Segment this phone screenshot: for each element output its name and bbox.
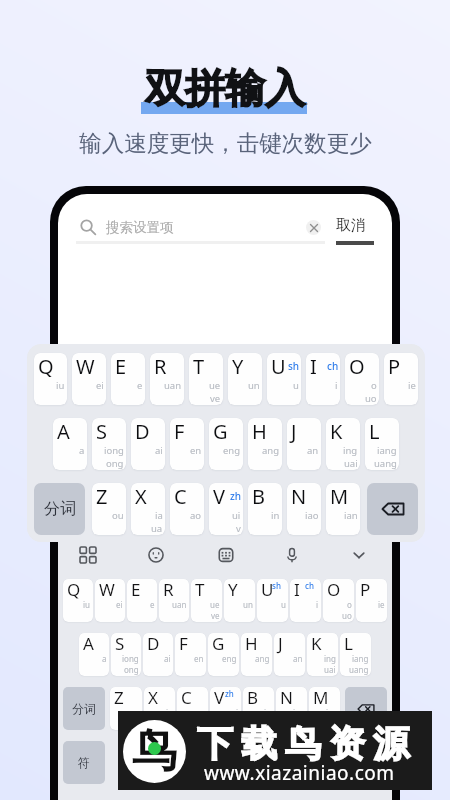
button[interactable]: Backspace (367, 483, 418, 535)
button[interactable]: R (150, 353, 184, 405)
staticText: S (96, 418, 107, 445)
button[interactable]: O (345, 353, 379, 405)
staticText: P (360, 579, 371, 601)
button[interactable]: P (384, 353, 418, 405)
staticText: iang (377, 444, 397, 457)
button[interactable]: L (365, 418, 399, 470)
staticText: F (179, 633, 188, 655)
button[interactable]: Emoji (142, 542, 170, 568)
staticText: W (76, 353, 95, 380)
button[interactable]: Keyboard layout (212, 542, 240, 568)
button[interactable]: W (72, 353, 106, 405)
button[interactable]: Y (228, 353, 262, 405)
button[interactable]: H (241, 633, 272, 676)
button[interactable]: U (257, 579, 288, 622)
staticText: I (294, 579, 300, 601)
staticText: U (271, 353, 286, 380)
button[interactable]: V (209, 483, 243, 535)
button[interactable]: M (326, 483, 360, 535)
button[interactable]: J (274, 633, 305, 676)
button[interactable]: B (248, 483, 282, 535)
button[interactable]: Z (110, 687, 142, 730)
button[interactable]: C (177, 687, 208, 730)
button[interactable]: T (189, 353, 223, 405)
staticText: ian (326, 707, 338, 718)
button[interactable]: E (127, 579, 157, 622)
button[interactable]: J (287, 418, 321, 470)
button[interactable]: D (131, 418, 165, 470)
button[interactable]: Voice input (278, 542, 306, 568)
staticText: ian (344, 509, 358, 522)
button[interactable]: M (309, 687, 340, 730)
button[interactable]: F (175, 633, 206, 676)
staticText: a (102, 653, 107, 664)
button[interactable]: O (323, 579, 354, 622)
button[interactable]: More (74, 542, 102, 568)
button[interactable]: 搜索设置项 (106, 218, 216, 236)
staticText: eng (222, 653, 237, 664)
button[interactable]: Backspace (345, 687, 387, 730)
button[interactable]: I (290, 579, 321, 622)
button[interactable]: X (144, 687, 175, 730)
button[interactable]: E (111, 353, 145, 405)
staticText: e (150, 599, 155, 610)
button[interactable]: 取消 (336, 216, 366, 235)
button[interactable]: G (208, 633, 239, 676)
button[interactable]: 分词 (34, 483, 85, 535)
staticText: ch (327, 359, 339, 373)
staticText: Z (96, 483, 108, 510)
button[interactable]: Hide keyboard (345, 542, 373, 568)
button[interactable]: 符 (63, 741, 105, 784)
staticText: A (57, 418, 70, 445)
button[interactable]: Z (92, 483, 126, 535)
button[interactable]: Clear search (306, 220, 321, 235)
button[interactable]: N (276, 687, 307, 730)
button[interactable]: X (131, 483, 165, 535)
staticText: u (293, 379, 299, 392)
button[interactable]: F (170, 418, 204, 470)
button[interactable]: K (307, 633, 338, 676)
button[interactable]: H (248, 418, 282, 470)
button[interactable]: D (143, 633, 173, 676)
button[interactable]: S (92, 418, 126, 470)
button[interactable]: V (210, 687, 241, 730)
button[interactable]: Q (63, 579, 93, 622)
button[interactable]: L (340, 633, 371, 676)
staticText: ia (166, 707, 173, 718)
button[interactable]: R (159, 579, 189, 622)
button[interactable]: G (209, 418, 243, 470)
staticText: ch (305, 580, 314, 591)
staticText: J (291, 418, 297, 445)
button[interactable]: B (243, 687, 274, 730)
staticText: un (248, 379, 260, 392)
staticText: un (243, 599, 253, 610)
staticText: 双拼输入 (145, 63, 305, 113)
button[interactable]: P (356, 579, 387, 622)
button[interactable]: S (111, 633, 141, 676)
button[interactable]: A (79, 633, 109, 676)
button[interactable]: N (287, 483, 321, 535)
staticText: uan (164, 379, 182, 392)
staticText: 取消 (336, 216, 366, 235)
staticText: Q (38, 353, 54, 380)
staticText: uai (344, 457, 358, 470)
button[interactable]: Q (34, 353, 67, 405)
button[interactable]: I (306, 353, 340, 405)
button[interactable]: C (170, 483, 204, 535)
button[interactable]: U (267, 353, 301, 405)
button[interactable]: W (95, 579, 125, 622)
button[interactable]: Y (224, 579, 255, 622)
staticText: E (131, 579, 141, 601)
staticText: K (330, 418, 343, 445)
button[interactable]: A (53, 418, 87, 470)
button[interactable]: 分词 (63, 687, 105, 730)
staticText: ue (210, 599, 220, 610)
staticText: Y (232, 353, 244, 380)
staticText: e (137, 379, 143, 392)
staticText: 下载鸟资源 (193, 721, 413, 766)
staticText: X (135, 483, 147, 510)
button[interactable]: T (191, 579, 222, 622)
staticText: u (281, 599, 286, 610)
button[interactable]: K (326, 418, 360, 470)
staticText: iao (305, 509, 319, 522)
